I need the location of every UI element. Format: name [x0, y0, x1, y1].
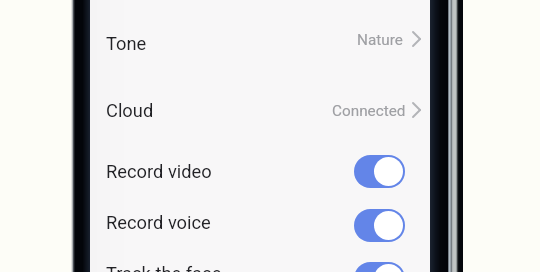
- staticText: Track the face: [106, 263, 222, 272]
- staticText: Connected: [332, 102, 406, 120]
- staticText: Cloud: [106, 100, 154, 121]
- staticText: Nature: [357, 31, 403, 49]
- button[interactable]: Record video, on: [354, 155, 405, 188]
- staticText: Record voice: [106, 212, 211, 233]
- button[interactable]: Record voice, on: [354, 209, 405, 242]
- button[interactable]: Track the face, on: [354, 262, 405, 272]
- staticText: Tone: [106, 33, 147, 54]
- button[interactable]: Tone: [90, 21, 430, 66]
- button[interactable]: Track the face: [90, 253, 430, 272]
- button[interactable]: Cloud: [90, 88, 430, 133]
- button[interactable]: Record voice: [90, 200, 430, 250]
- button[interactable]: Record video: [90, 148, 430, 198]
- staticText: Record video: [106, 161, 212, 182]
